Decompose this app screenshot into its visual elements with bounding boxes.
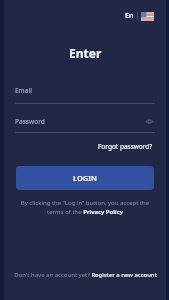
staticText: Forgot password? [98, 142, 153, 151]
button[interactable]: Don't have an account yet? Register a ne… [10, 269, 161, 281]
staticText: LOGIN [73, 173, 98, 183]
staticText: By clicking the “Log in” button, you acc… [20, 199, 150, 216]
button[interactable]: Show password [144, 116, 155, 127]
button[interactable]: LOGIN [16, 166, 154, 190]
staticText: Email [15, 86, 33, 95]
staticText: Don't have an account yet? Register a ne… [14, 271, 157, 279]
button[interactable]: Change language [123, 9, 156, 23]
staticText: Password [15, 117, 45, 126]
staticText: Enter [69, 45, 102, 61]
staticText: En [125, 11, 134, 21]
button[interactable]: Email [15, 86, 155, 95]
button[interactable]: Forgot password? [96, 141, 155, 152]
button[interactable]: Password [15, 116, 155, 127]
